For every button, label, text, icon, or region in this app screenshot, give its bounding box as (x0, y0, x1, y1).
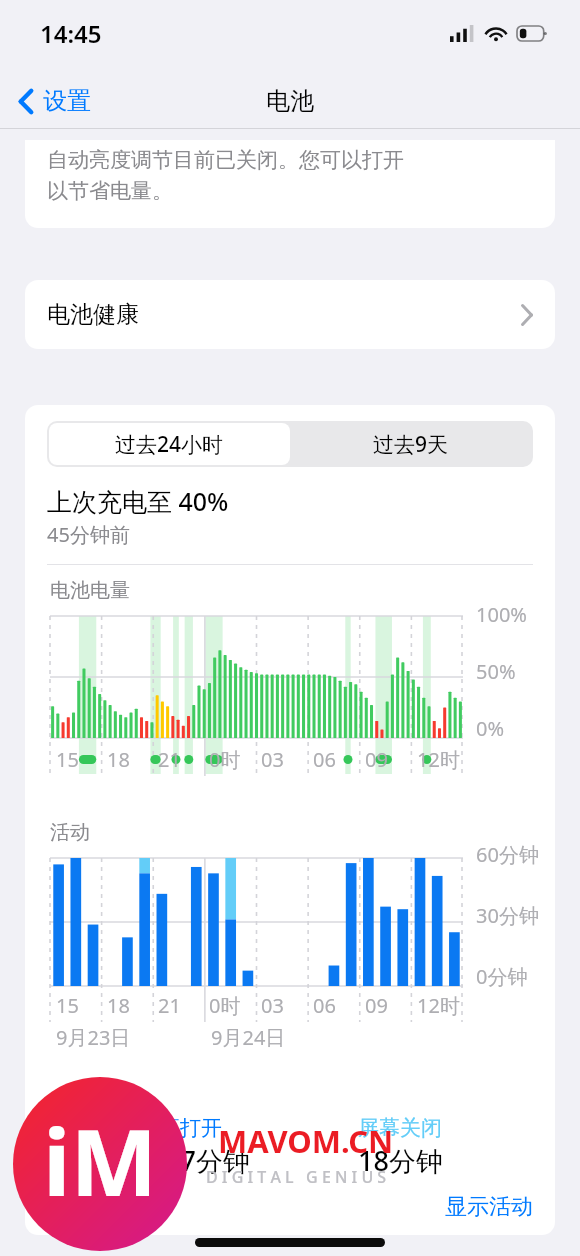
staticText: 06 (313, 992, 336, 1019)
staticText: 12时 (417, 746, 460, 773)
staticText: 03 (261, 746, 284, 773)
button[interactable]: 过去9天 (290, 423, 531, 465)
staticText: 12时 (417, 992, 460, 1019)
staticText: 50% (476, 658, 516, 685)
staticText: 屏幕关闭 (358, 1115, 442, 1141)
staticText: iM (43, 1098, 158, 1223)
staticText: 上次充电至 40% (47, 484, 229, 518)
staticText: 显示活动 (445, 1193, 533, 1221)
staticText: MAVOM.CN (218, 1120, 394, 1162)
staticText: 过去24小时 (115, 430, 224, 459)
staticText: 18 (107, 746, 130, 773)
staticText: 9月24日 (211, 1024, 286, 1051)
staticText: 15 (56, 746, 79, 773)
staticText: 0时 (209, 992, 241, 1019)
staticText: 14:45 (40, 17, 102, 50)
staticText: 0时 (209, 746, 241, 773)
staticText: 60分钟 (476, 841, 539, 868)
staticText: 06 (313, 746, 336, 773)
staticText: 0% (476, 715, 505, 742)
button[interactable]: 过去24小时 (49, 423, 290, 465)
staticText: 设置 (43, 86, 91, 116)
staticText: 09 (365, 992, 388, 1019)
staticText: 100% (476, 601, 527, 628)
staticText: D I G I T A L G E N I U S (206, 1166, 387, 1188)
staticText: 18分钟 (358, 1142, 443, 1179)
staticText: 45分钟前 (47, 521, 130, 548)
staticText: 09 (365, 746, 388, 773)
staticText: 9月23日 (56, 1024, 131, 1051)
staticText: 21 (158, 992, 181, 1019)
staticText: 15 (56, 992, 79, 1019)
staticText: 0分钟 (476, 963, 528, 990)
staticText: 活动 (50, 820, 90, 845)
staticText: 18 (107, 992, 130, 1019)
staticText: 电池健康 (47, 300, 139, 329)
button[interactable]: 电池健康 (25, 280, 555, 349)
staticText: 30分钟 (476, 902, 539, 929)
button[interactable]: 设置 (12, 78, 97, 124)
staticText: 03 (261, 992, 284, 1019)
staticText: 电池电量 (50, 578, 130, 603)
staticText: 21 (158, 746, 181, 773)
staticText: 过去9天 (373, 430, 449, 459)
staticText: 电池电量 (47, 1193, 135, 1221)
staticText: 屏幕打开 (138, 1115, 222, 1141)
staticText: 9小时7分钟 (111, 1142, 250, 1179)
button[interactable]: 显示活动 (445, 1193, 533, 1221)
staticText: 电池 (266, 86, 314, 116)
staticText: 自动亮度调节目前已关闭。您可以打开 以节省电量。 (47, 147, 404, 204)
